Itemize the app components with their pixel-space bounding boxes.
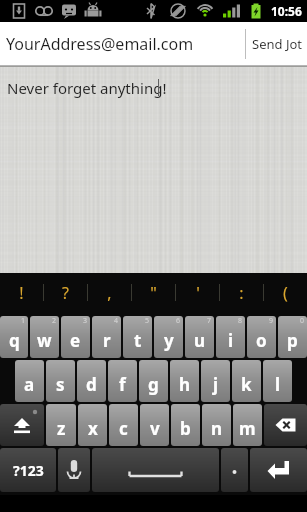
staticText: w xyxy=(37,329,52,352)
staticText: 3 xyxy=(83,316,88,326)
staticText: r xyxy=(103,329,111,352)
staticText: o xyxy=(256,329,267,352)
button[interactable]: 5 xyxy=(123,316,152,358)
staticText: 5 xyxy=(145,316,150,326)
button[interactable]: 7 xyxy=(185,316,214,358)
staticText: t xyxy=(134,329,142,352)
staticText: i xyxy=(228,329,234,352)
button[interactable]: Shift xyxy=(0,404,44,446)
staticText: v xyxy=(150,417,160,440)
button[interactable]: 1 xyxy=(0,316,28,358)
button[interactable]: j xyxy=(201,360,230,402)
button[interactable]: YourAddress@email.com xyxy=(0,33,245,55)
button[interactable]: Backspace xyxy=(264,404,307,446)
button[interactable]: Enter xyxy=(250,448,307,492)
button[interactable]: ' xyxy=(176,282,219,304)
staticText: d xyxy=(86,373,97,396)
button[interactable]: 0 xyxy=(278,316,307,358)
staticText: l xyxy=(275,373,281,396)
staticText: p xyxy=(287,329,298,352)
button[interactable]: 2 xyxy=(30,316,59,358)
staticText: h xyxy=(179,373,191,396)
staticText: : xyxy=(239,282,244,304)
staticText: 2 xyxy=(52,316,57,326)
button[interactable]: m xyxy=(233,404,262,446)
staticText: ' xyxy=(196,282,200,304)
staticText: Never forget anything! xyxy=(7,78,167,98)
button[interactable]: " xyxy=(132,282,175,304)
staticText: 4 xyxy=(114,316,119,326)
button[interactable]: v xyxy=(140,404,169,446)
staticText: 9 xyxy=(269,316,274,326)
button[interactable]: 3 xyxy=(61,316,90,358)
button[interactable]: g xyxy=(139,360,168,402)
staticText: b xyxy=(180,417,191,440)
button[interactable]: x xyxy=(78,404,107,446)
staticText: 1 xyxy=(21,316,26,326)
button[interactable]: s xyxy=(46,360,75,402)
staticText: j xyxy=(213,373,219,396)
staticText: z xyxy=(57,417,66,440)
staticText: a xyxy=(24,373,35,396)
button[interactable]: Space xyxy=(92,448,219,492)
button[interactable]: , xyxy=(88,282,131,304)
staticText: k xyxy=(241,373,252,396)
staticText: f xyxy=(119,373,126,396)
staticText: 10:56 xyxy=(271,3,302,19)
button[interactable]: 4 xyxy=(92,316,121,358)
staticText: 6 xyxy=(176,316,181,326)
button[interactable]: Period xyxy=(221,448,248,492)
staticText: u xyxy=(194,329,206,352)
staticText: n xyxy=(211,417,223,440)
staticText: ? xyxy=(62,282,69,304)
button[interactable]: ( xyxy=(264,282,307,304)
staticText: ?123 xyxy=(13,461,44,480)
staticText: y xyxy=(164,329,174,352)
button[interactable]: l xyxy=(263,360,292,402)
button[interactable]: z xyxy=(46,404,76,446)
button[interactable]: 6 xyxy=(154,316,183,358)
button[interactable]: : xyxy=(220,282,263,304)
staticText: q xyxy=(9,329,20,352)
button[interactable]: ! xyxy=(0,282,43,304)
staticText: m xyxy=(239,417,256,440)
staticText: 8 xyxy=(238,316,243,326)
staticText: c xyxy=(119,417,128,440)
staticText: YourAddress@email.com xyxy=(6,33,194,55)
staticText: , xyxy=(107,282,112,304)
staticText: 0 xyxy=(300,316,305,326)
staticText: x xyxy=(88,417,98,440)
staticText: e xyxy=(70,329,81,352)
staticText: " xyxy=(150,282,157,304)
button[interactable]: b xyxy=(171,404,200,446)
button[interactable]: h xyxy=(170,360,199,402)
staticText: Send Jot xyxy=(252,35,302,53)
button[interactable]: 9 xyxy=(247,316,276,358)
button[interactable]: 8 xyxy=(216,316,245,358)
button[interactable]: Send Jot xyxy=(246,35,307,53)
button[interactable]: Voice input xyxy=(58,448,90,492)
staticText: s xyxy=(56,373,65,396)
button[interactable]: c xyxy=(109,404,138,446)
button[interactable]: f xyxy=(108,360,137,402)
button[interactable]: ? xyxy=(44,282,87,304)
staticText: ! xyxy=(19,282,24,304)
button[interactable]: n xyxy=(202,404,231,446)
button[interactable]: ?123 xyxy=(0,448,56,492)
staticText: 7 xyxy=(207,316,212,326)
button[interactable]: k xyxy=(232,360,261,402)
button[interactable]: a xyxy=(15,360,44,402)
button[interactable]: d xyxy=(77,360,106,402)
staticText: g xyxy=(148,373,159,396)
staticText: ( xyxy=(283,282,288,304)
